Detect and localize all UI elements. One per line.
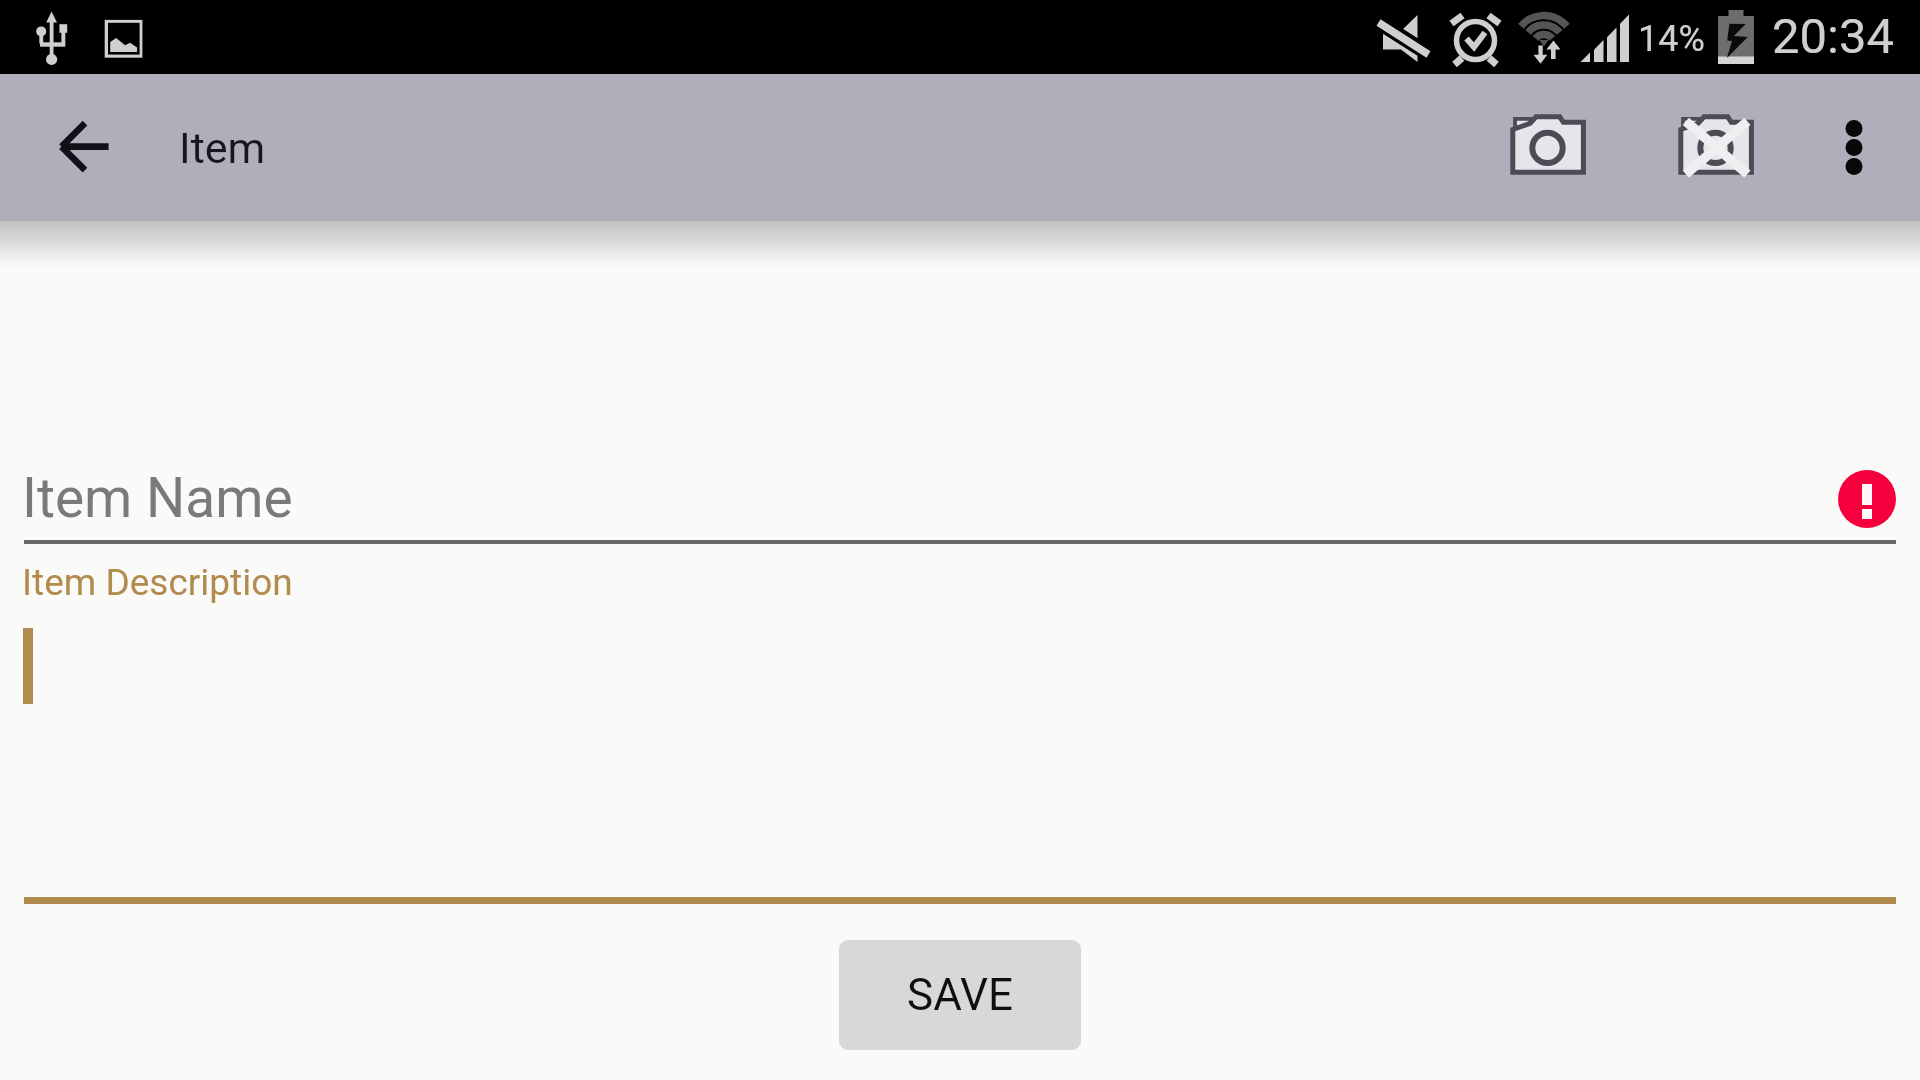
button[interactable]: SAVE <box>839 940 1081 1050</box>
button[interactable]: Item Description <box>0 556 1920 904</box>
button[interactable]: Item Name <box>0 440 1920 544</box>
button[interactable]: Remove photo <box>1643 74 1790 221</box>
staticText: 14% <box>1638 18 1705 60</box>
staticText: 20:34 <box>1772 8 1895 65</box>
button[interactable]: Take photo <box>1475 74 1622 221</box>
staticText: SAVE <box>907 969 1013 1021</box>
button[interactable]: Back <box>35 74 182 221</box>
staticText: Item <box>179 123 266 173</box>
staticText: Item Name <box>22 466 293 530</box>
button[interactable]: More options <box>1781 74 1920 221</box>
staticText: Item Description <box>22 561 293 604</box>
